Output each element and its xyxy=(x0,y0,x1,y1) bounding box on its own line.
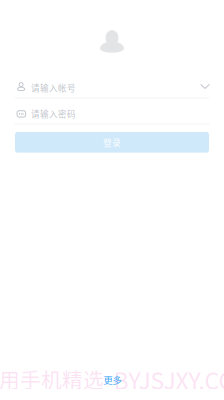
staticText: 登录 xyxy=(103,136,121,149)
staticText: 请输入密码 xyxy=(31,108,76,120)
staticText: 更多 xyxy=(103,373,121,386)
button[interactable]: 请输入密码 xyxy=(0,98,224,124)
button[interactable]: 请输入帐号 xyxy=(0,74,224,98)
button[interactable]: 登录 xyxy=(15,132,209,153)
staticText: 请输入帐号 xyxy=(31,82,76,94)
staticText: 用手机精选 xyxy=(0,364,104,394)
staticText: BYJSJXY.COM xyxy=(113,363,224,396)
